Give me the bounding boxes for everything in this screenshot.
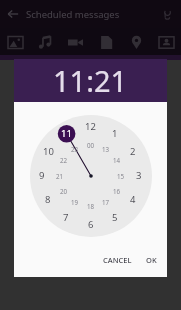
button[interactable]: Attach file [161,8,174,21]
button[interactable]: Location [124,30,148,54]
button[interactable]: Audio [33,30,57,54]
staticText: 8 [45,193,51,206]
staticText: 11:21 [53,61,128,100]
staticText: 3 [136,169,142,182]
staticText: OK [146,255,157,265]
staticText: 2 [130,145,136,158]
staticText: Ok [122,257,134,269]
staticText: 20 [60,187,68,195]
staticText: 13 [102,145,110,153]
staticText: 5 [112,211,118,224]
staticText: 6 [88,218,94,231]
staticText: 21 [56,172,64,180]
staticText: 12 [85,120,96,133]
button[interactable]: OK [142,251,161,269]
staticText: 19 [71,198,79,206]
button[interactable]: Contact [154,30,178,54]
staticText: 11 [61,127,72,140]
staticText: 9 [39,169,45,182]
button[interactable]: Video [63,30,87,54]
button[interactable]: Back [5,6,21,22]
staticText: 22 [60,156,68,164]
staticText: 23 [71,145,79,153]
button[interactable]: Document [94,30,118,54]
staticText: 4 [130,193,136,206]
button[interactable]: Ok [96,252,160,274]
staticText: 1 [112,127,118,140]
staticText: 00 [87,141,95,149]
staticText: CANCEL [103,255,132,265]
staticText: 14 [113,156,121,164]
staticText: 18 [87,202,95,210]
button[interactable]: CANCEL [99,251,136,269]
staticText: Scheduled messages [26,8,120,21]
staticText: 16 [113,187,121,195]
staticText: 17 [102,198,110,206]
button[interactable]: Image [3,30,27,54]
staticText: 10 [43,145,54,158]
staticText: 7 [63,211,69,224]
staticText: 15 [117,172,125,180]
